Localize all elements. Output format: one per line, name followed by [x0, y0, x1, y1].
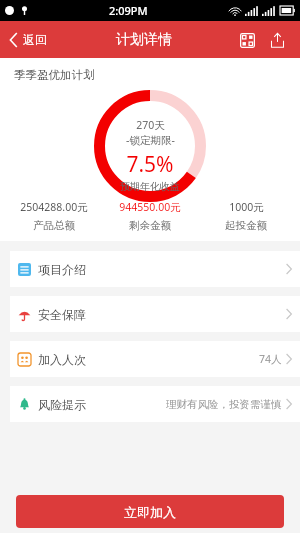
button[interactable]: 立即加入: [16, 495, 284, 528]
staticText: 剩余金额: [129, 219, 171, 232]
staticText: 季季盈优加计划: [14, 68, 95, 82]
staticText: 944550.00元: [119, 200, 181, 214]
staticText: 安全保障: [38, 307, 86, 322]
staticText: 加入人次: [38, 352, 86, 367]
staticText: 7.5%: [126, 150, 174, 176]
staticText: 返回: [23, 32, 47, 47]
staticText: 产品总额: [33, 219, 75, 232]
staticText: 1000元: [229, 200, 264, 214]
staticText: -锁定期限-: [126, 133, 175, 147]
staticText: 2504288.00元: [20, 200, 88, 214]
staticText: 项目介绍: [38, 262, 86, 277]
button[interactable]: 返回: [10, 32, 55, 47]
staticText: 预期年化收益: [0, 180, 300, 193]
staticText: 270天: [136, 118, 165, 132]
staticText: 74人: [259, 352, 282, 366]
staticText: 立即加入: [124, 504, 176, 520]
staticText: 风险提示: [38, 397, 86, 412]
button[interactable]: Share: [264, 27, 290, 53]
staticText: 计划详情: [116, 31, 172, 49]
button[interactable]: 安全保障: [10, 296, 300, 332]
button[interactable]: 风险提示: [10, 386, 300, 422]
button[interactable]: QR code: [234, 27, 260, 53]
staticText: 理财有风险，投资需谨慎: [166, 398, 282, 411]
staticText: 起投金额: [225, 219, 267, 232]
button[interactable]: 加入人次: [10, 341, 300, 377]
staticText: 2:09PM: [109, 3, 148, 18]
button[interactable]: 项目介绍: [10, 251, 300, 287]
